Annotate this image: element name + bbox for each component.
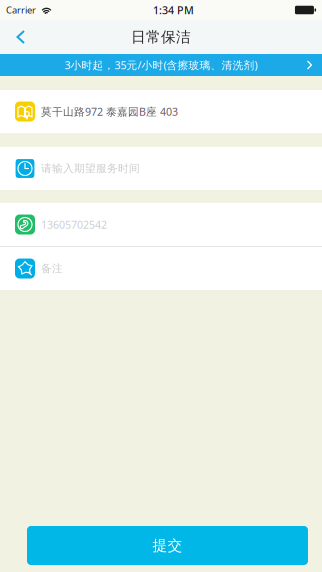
button[interactable]: 提交 xyxy=(27,526,308,565)
staticText: 1:34 PM xyxy=(153,3,194,17)
button[interactable]: 请输入期望服务时间 xyxy=(0,147,322,190)
staticText: 13605702542 xyxy=(41,217,107,232)
staticText: 日常保洁 xyxy=(131,28,191,46)
button[interactable]: 13605702542 xyxy=(0,203,322,246)
staticText: 备注 xyxy=(41,262,63,275)
staticText: 请输入期望服务时间 xyxy=(41,162,140,175)
button[interactable]: 3小时起，35元/小时(含擦玻璃、清洗剂) xyxy=(0,54,322,76)
staticText: 提交 xyxy=(152,536,182,554)
button[interactable]: 莫干山路972 泰嘉园B座 403 xyxy=(0,90,322,133)
button[interactable]: 备注 xyxy=(0,247,322,290)
staticText: 3小时起，35元/小时(含擦玻璃、清洗剂) xyxy=(64,58,257,72)
staticText: Carrier xyxy=(6,4,36,16)
button[interactable]: Back xyxy=(0,20,42,54)
staticText: 莫干山路972 泰嘉园B座 403 xyxy=(41,104,178,119)
